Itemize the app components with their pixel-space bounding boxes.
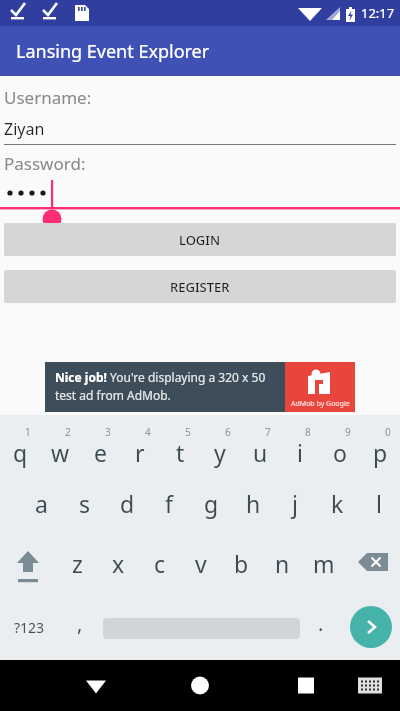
staticText: 0 <box>385 425 391 439</box>
staticText: 9 <box>345 425 351 439</box>
staticText: 12:17 <box>361 4 395 22</box>
staticText: , <box>77 610 83 637</box>
button[interactable]: 4 <box>120 423 160 478</box>
button[interactable]: 0 <box>360 423 400 478</box>
staticText: v <box>195 548 207 579</box>
button[interactable]: Shift <box>2 545 54 593</box>
staticText: z <box>72 548 83 579</box>
staticText: a <box>35 488 48 519</box>
button[interactable]: j <box>274 485 316 535</box>
button[interactable]: f <box>148 485 190 535</box>
button[interactable]: v <box>180 545 221 593</box>
button[interactable]: x <box>98 545 139 593</box>
staticText: REGISTER <box>170 278 230 296</box>
button[interactable]: l <box>358 485 400 535</box>
button[interactable]: d <box>106 485 148 535</box>
staticText: s <box>79 488 91 519</box>
button[interactable]: s <box>63 485 106 535</box>
staticText: n <box>275 548 290 579</box>
button[interactable]: REGISTER <box>4 270 396 303</box>
button[interactable]: Back <box>66 660 126 711</box>
button[interactable]: n <box>262 545 303 593</box>
button[interactable]: 5 <box>160 423 200 478</box>
button[interactable]: Enter <box>350 606 392 648</box>
staticText: You're displaying a 320 x 50 <box>107 369 266 385</box>
staticText: 5 <box>185 425 191 439</box>
staticText: w <box>51 437 70 468</box>
staticText: o <box>333 437 347 468</box>
staticText: e <box>94 437 107 468</box>
button[interactable]: , <box>62 605 98 650</box>
staticText: ?123 <box>14 618 45 637</box>
staticText: 8 <box>305 425 311 439</box>
button[interactable]: LOGIN <box>4 223 396 256</box>
button[interactable]: ?123 <box>2 605 57 650</box>
button[interactable]: Nice job! <box>45 362 355 412</box>
staticText: 7 <box>265 425 271 439</box>
staticText: Lansing Event Explorer <box>16 39 210 64</box>
button[interactable]: 1 <box>0 423 40 478</box>
staticText: d <box>120 488 135 519</box>
staticText: h <box>246 488 261 519</box>
staticText: LOGIN <box>179 231 221 249</box>
staticText: 2 <box>65 425 71 439</box>
staticText: j <box>292 488 298 519</box>
button[interactable]: . <box>305 605 337 650</box>
button[interactable]: a <box>20 485 63 535</box>
staticText: x <box>112 548 125 579</box>
staticText: Ziyan <box>4 118 45 140</box>
staticText: r <box>135 437 145 468</box>
button[interactable]: 7 <box>240 423 280 478</box>
button[interactable]: 9 <box>320 423 360 478</box>
staticText: 1 <box>25 425 31 439</box>
staticText: i <box>297 437 303 468</box>
button[interactable]: h <box>232 485 274 535</box>
button[interactable]: z <box>56 545 98 593</box>
staticText: . <box>318 610 324 637</box>
staticText: 4 <box>145 425 151 439</box>
button[interactable]: Keyboard <box>348 660 392 711</box>
staticText: b <box>234 548 249 579</box>
button[interactable]: 2 <box>40 423 80 478</box>
button[interactable]: Home <box>170 660 230 711</box>
button[interactable]: b <box>221 545 262 593</box>
staticText: Username: <box>4 86 92 109</box>
staticText: y <box>214 437 226 468</box>
button[interactable]: Recents <box>281 660 331 711</box>
staticText: Password: <box>4 152 86 175</box>
button[interactable]: 3 <box>80 423 120 478</box>
staticText: t <box>176 437 185 468</box>
staticText: f <box>165 488 173 519</box>
staticText: l <box>376 488 382 519</box>
staticText: p <box>373 437 388 468</box>
staticText: AdMob by Google <box>291 399 350 409</box>
button[interactable]: g <box>190 485 232 535</box>
staticText: q <box>13 437 28 468</box>
staticText: 6 <box>225 425 231 439</box>
button[interactable]: Backspace <box>348 545 398 593</box>
button[interactable]: c <box>139 545 180 593</box>
staticText: c <box>154 548 166 579</box>
button[interactable]: m <box>303 545 344 593</box>
staticText: g <box>204 488 219 519</box>
staticText: Nice job! <box>55 369 107 385</box>
staticText: u <box>253 437 268 468</box>
button[interactable]: 6 <box>200 423 240 478</box>
staticText: 3 <box>105 425 111 439</box>
staticText: k <box>331 488 344 519</box>
button[interactable]: 8 <box>280 423 320 478</box>
button[interactable]: k <box>316 485 358 535</box>
staticText: m <box>313 548 335 579</box>
staticText: test ad from AdMob. <box>55 387 171 403</box>
